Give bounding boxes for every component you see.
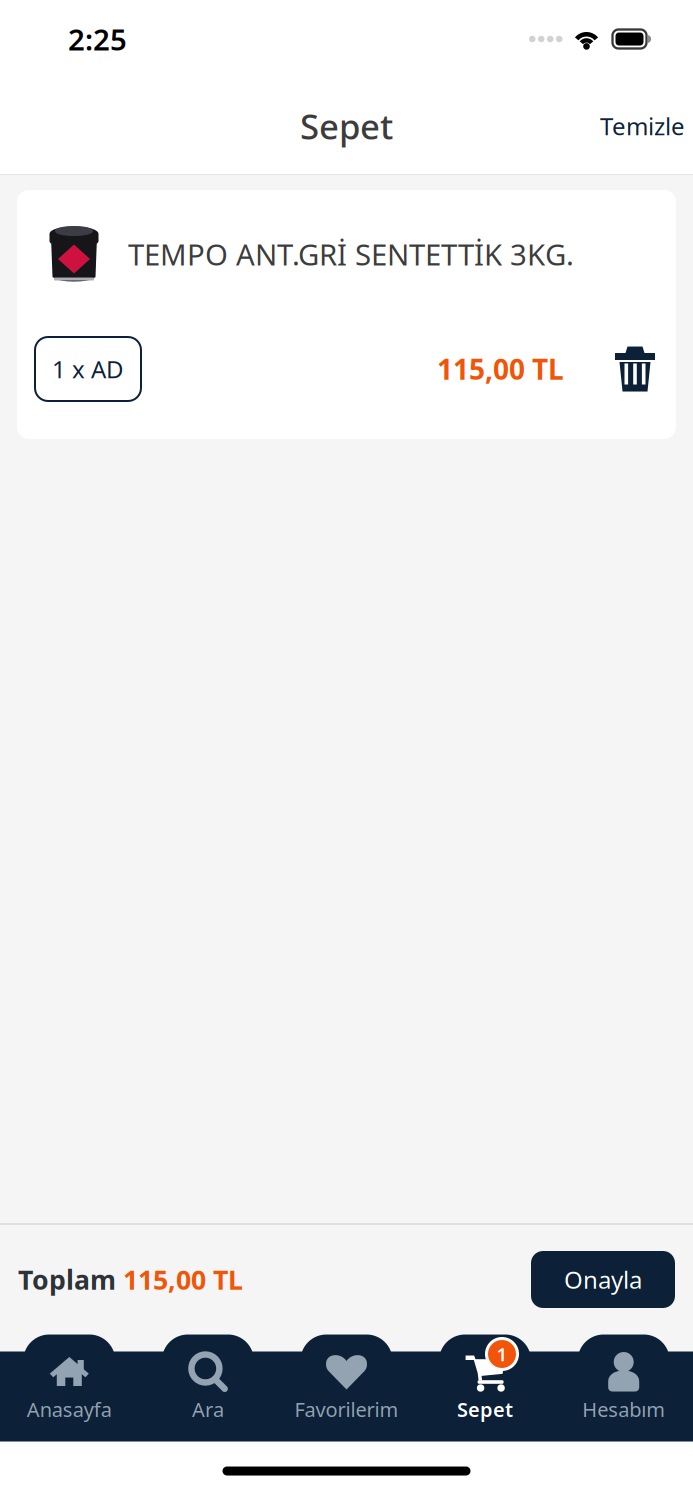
button[interactable]: Temizle [592,94,693,158]
button[interactable]: Favorilerim [277,1351,416,1441]
staticText: Sepet [457,1396,513,1422]
staticText: Toplam [18,1262,123,1297]
button[interactable]: Sepet [416,1351,554,1441]
button[interactable]: Ara [139,1351,277,1441]
staticText: Hesabım [582,1396,665,1422]
staticText: Onayla [564,1264,642,1295]
button[interactable]: Onayla [531,1251,675,1308]
staticText: Favorilerim [294,1396,398,1422]
staticText: Sepet [300,103,393,149]
staticText: 115,00 TL [123,1262,243,1297]
button[interactable]: Ürünü sil [564,345,656,392]
staticText: 1 [496,1342,507,1366]
staticText: Temizle [600,110,685,142]
button[interactable]: Hesabım [554,1351,693,1441]
staticText: Anasayfa [27,1396,112,1422]
staticText: 1 x AD [52,353,124,385]
button[interactable]: 1 x AD [35,337,141,401]
staticText: Ara [192,1396,224,1422]
staticText: 115,00 TL [437,350,564,388]
button[interactable]: Anasayfa [0,1351,139,1441]
staticText: TEMPO ANT.GRİ SENTETTİK 3KG. [128,234,574,273]
staticText: 2:25 [68,19,127,58]
